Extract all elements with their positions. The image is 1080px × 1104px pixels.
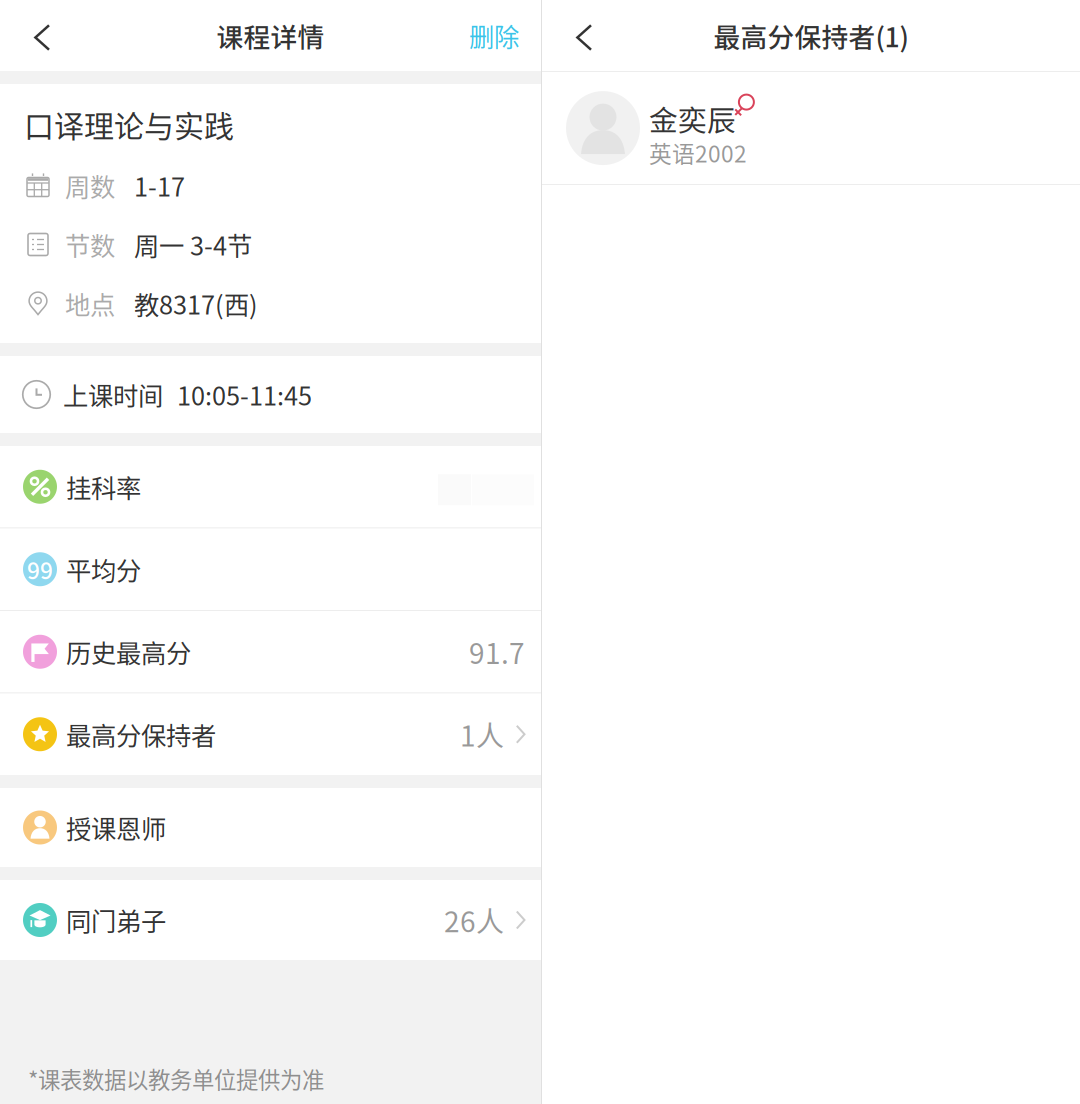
staticText: *课表数据以教务单位提供为准 <box>28 1063 324 1095</box>
staticText: 教8317(西) <box>134 285 258 322</box>
staticText: 英语2002 <box>649 136 747 169</box>
staticText: 同门弟子 <box>66 902 166 938</box>
staticText: 99 <box>27 553 53 586</box>
button[interactable]: 删除 <box>469 0 541 70</box>
button[interactable]: 金奕辰 <box>542 72 1080 184</box>
button[interactable]: 最高分保持者 <box>0 693 541 775</box>
staticText: 删除 <box>469 17 519 54</box>
staticText: 最高分保持者 <box>66 716 216 753</box>
staticText: 1人 <box>460 714 504 754</box>
staticText: 平均分 <box>66 551 141 588</box>
staticText: 金奕辰 <box>649 98 736 140</box>
staticText: 课程详情 <box>216 16 324 55</box>
staticText: 周数 <box>65 167 115 204</box>
staticText: 上课时间 <box>63 376 163 413</box>
staticText: 周一 3-4节 <box>134 226 252 263</box>
staticText: 91.7 <box>469 631 525 672</box>
button[interactable]: Back <box>542 0 604 70</box>
staticText: 挂科率 <box>66 468 141 505</box>
button[interactable]: 授课恩师 <box>0 788 541 867</box>
staticText: 节数 <box>65 226 115 263</box>
staticText: 口译理论与实践 <box>24 103 234 146</box>
button[interactable]: 99 <box>0 528 541 610</box>
button[interactable]: 挂科率 <box>0 446 541 527</box>
staticText: 26人 <box>444 900 504 940</box>
staticText: 1-17 <box>134 167 185 204</box>
staticText: 10:05-11:45 <box>177 376 312 413</box>
staticText: 历史最高分 <box>66 633 191 670</box>
staticText: 授课恩师 <box>66 809 166 846</box>
button[interactable]: 历史最高分 <box>0 611 541 692</box>
staticText: 最高分保持者(1) <box>713 16 908 55</box>
button[interactable]: Back <box>0 0 62 70</box>
staticText: 地点 <box>65 285 115 322</box>
button[interactable]: 同门弟子 <box>0 880 541 960</box>
